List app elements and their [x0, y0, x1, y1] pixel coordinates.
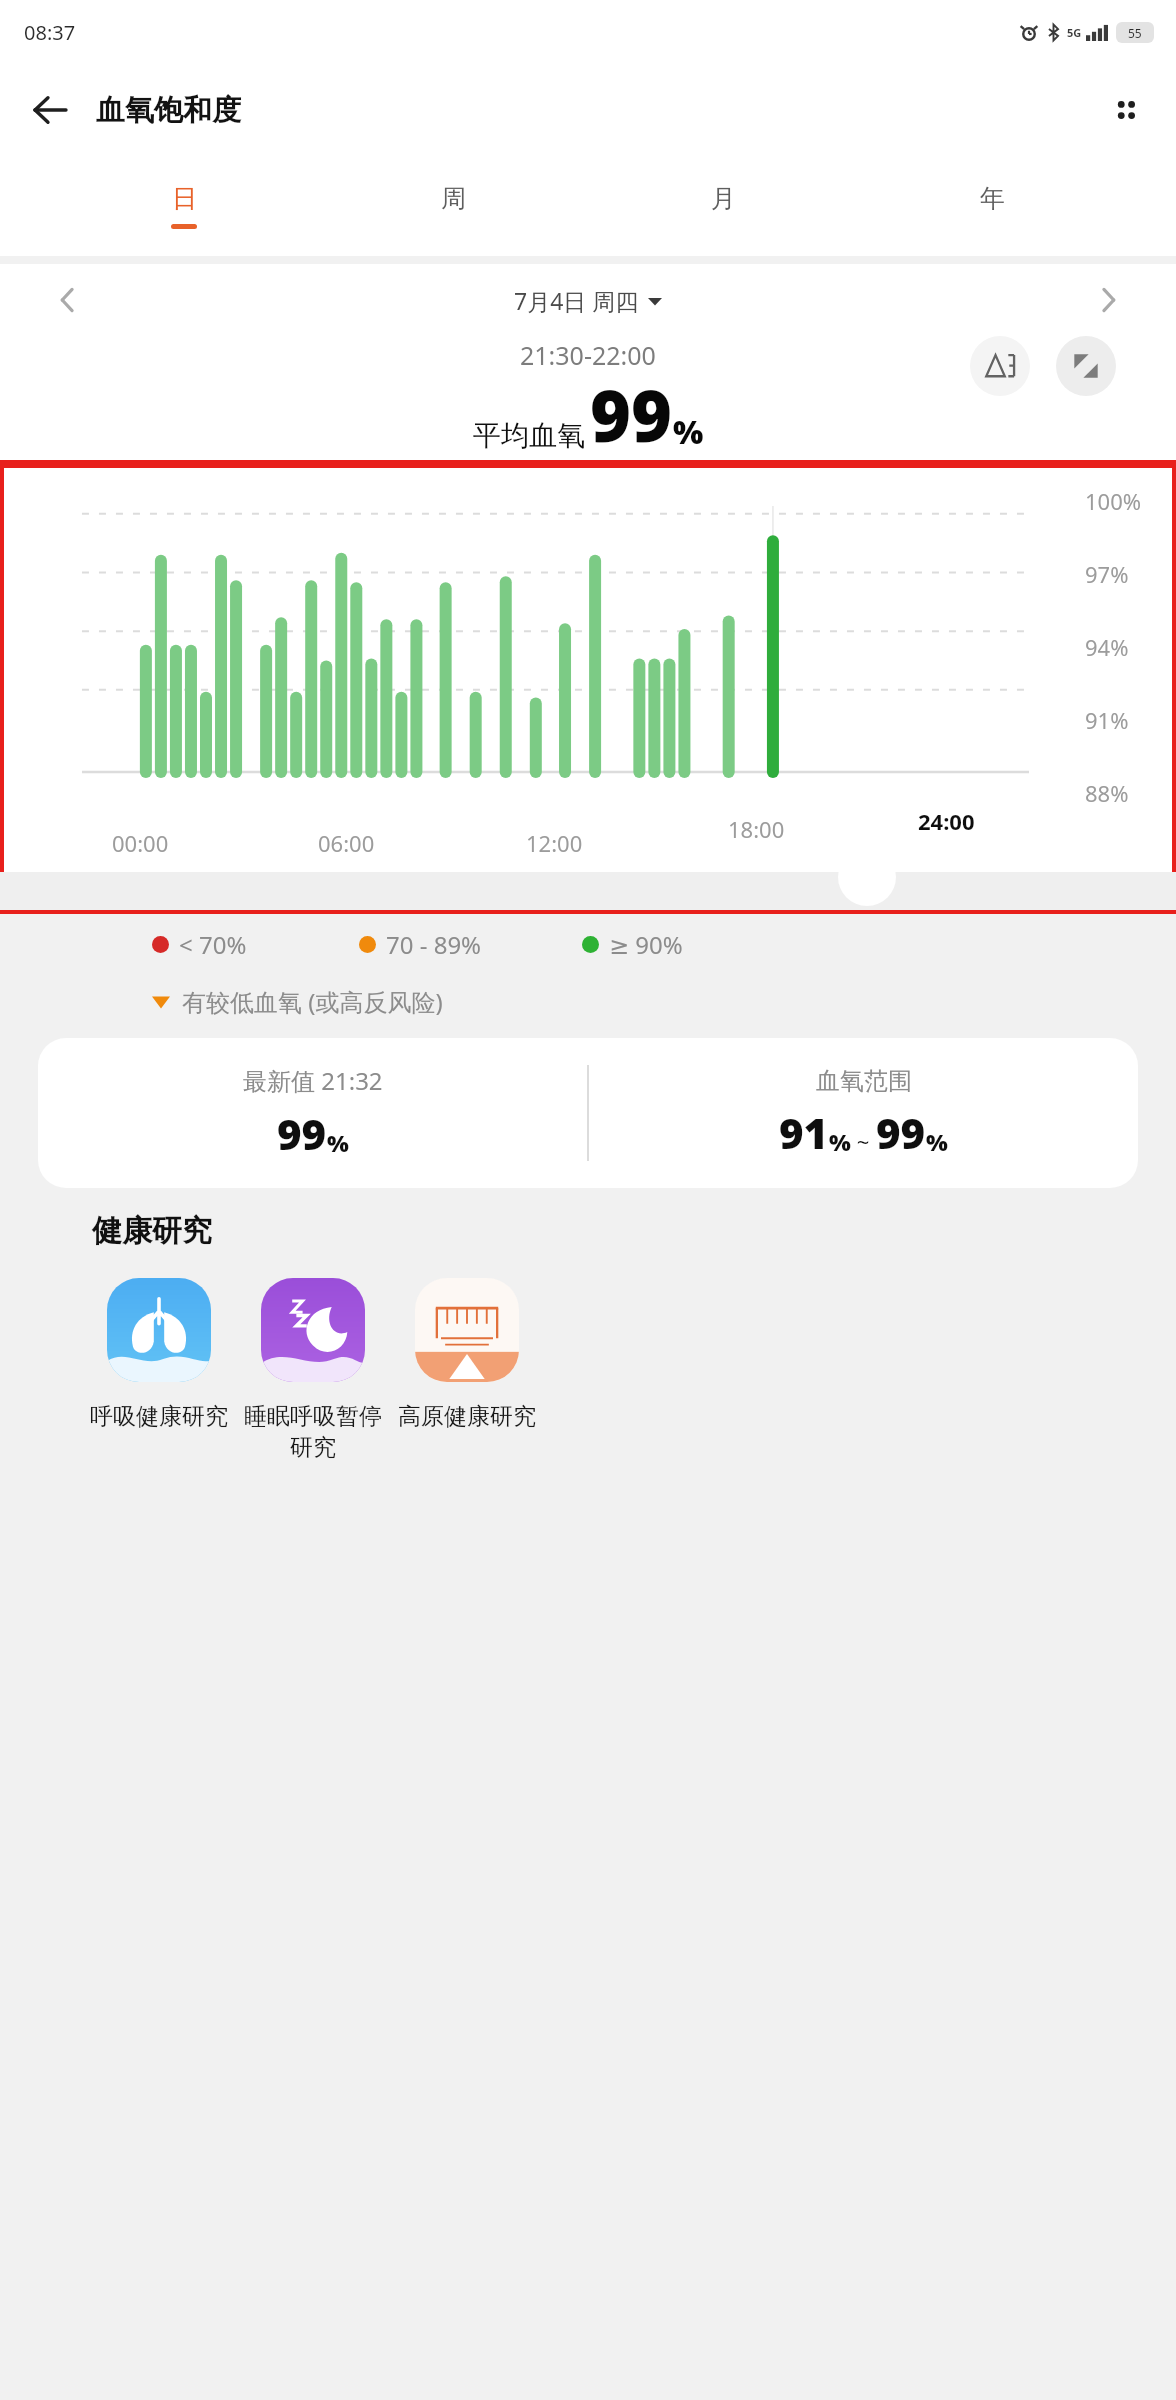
staticText: 06:00	[318, 828, 375, 858]
staticText: 99	[277, 1105, 327, 1162]
staticText: 88%	[1085, 778, 1129, 808]
staticText: < 70%	[179, 928, 247, 961]
button[interactable]: 高原健康研究	[390, 1278, 544, 1431]
staticText: 月	[711, 183, 736, 214]
staticText: 00:00	[112, 828, 169, 858]
button[interactable]: < 70%	[152, 928, 247, 961]
staticText: 99	[590, 367, 673, 462]
staticText: 94%	[1085, 632, 1129, 662]
staticText: 最新值 21:32	[243, 1064, 383, 1097]
staticText: 平均血氧	[473, 418, 585, 453]
staticText: 日	[172, 183, 197, 214]
staticText: 100%	[1085, 486, 1142, 516]
button[interactable]: Next day	[1080, 272, 1136, 328]
staticText: %	[926, 1126, 948, 1157]
button[interactable]: 7月4日 周四	[514, 285, 662, 316]
staticText: 24:00	[918, 806, 975, 836]
staticText: 周	[441, 183, 466, 214]
staticText: 12:00	[526, 828, 583, 858]
staticText: %	[327, 1127, 349, 1158]
button[interactable]: 睡眠呼吸暂停 研究	[236, 1278, 390, 1462]
button[interactable]: 月	[687, 183, 759, 229]
staticText: 08:37	[24, 19, 76, 46]
staticText: 55	[1128, 25, 1142, 41]
staticText: 年	[980, 183, 1005, 214]
button[interactable]: 呼吸健康研究	[82, 1278, 236, 1431]
staticText: 99	[876, 1104, 926, 1161]
button[interactable]: 日	[148, 183, 220, 229]
staticText: 高原健康研究	[398, 1402, 536, 1431]
staticText: %	[673, 410, 704, 454]
staticText: ≥ 90%	[609, 928, 683, 961]
button[interactable]: Full screen chart	[1056, 336, 1116, 396]
staticText: 健康研究	[92, 1212, 212, 1250]
staticText: %	[829, 1126, 851, 1157]
staticText: 70 - 89%	[386, 928, 482, 961]
button[interactable]: Measurement mode	[970, 336, 1030, 396]
staticText: 21:30-22:00	[520, 338, 656, 372]
button[interactable]: More options	[1094, 78, 1158, 142]
staticText: 血氧范围	[816, 1066, 912, 1096]
button[interactable]: 周	[417, 183, 489, 229]
staticText: ~	[851, 1126, 876, 1156]
button[interactable]: ≥ 90%	[582, 928, 683, 961]
staticText: 7月4日 周四	[514, 285, 639, 316]
staticText: 91%	[1085, 705, 1129, 735]
button[interactable]: 有较低血氧 (或高反风险)	[152, 985, 443, 1018]
staticText: 睡眠呼吸暂停 研究	[244, 1402, 382, 1462]
button[interactable]: Back	[18, 78, 82, 142]
staticText: 18:00	[728, 814, 785, 844]
button[interactable]: 最新值 21:32	[38, 1038, 1138, 1188]
button[interactable]: 年	[956, 183, 1028, 229]
button[interactable]: 70 - 89%	[359, 928, 482, 961]
button[interactable]: Time scrubber	[838, 848, 896, 906]
staticText: 5G	[1067, 25, 1082, 40]
staticText: 91	[779, 1104, 829, 1161]
staticText: 有较低血氧 (或高反风险)	[182, 985, 443, 1018]
staticText: 呼吸健康研究	[90, 1402, 228, 1431]
staticText: 血氧饱和度	[96, 92, 241, 129]
staticText: 97%	[1085, 559, 1129, 589]
button[interactable]: Previous day	[40, 272, 96, 328]
